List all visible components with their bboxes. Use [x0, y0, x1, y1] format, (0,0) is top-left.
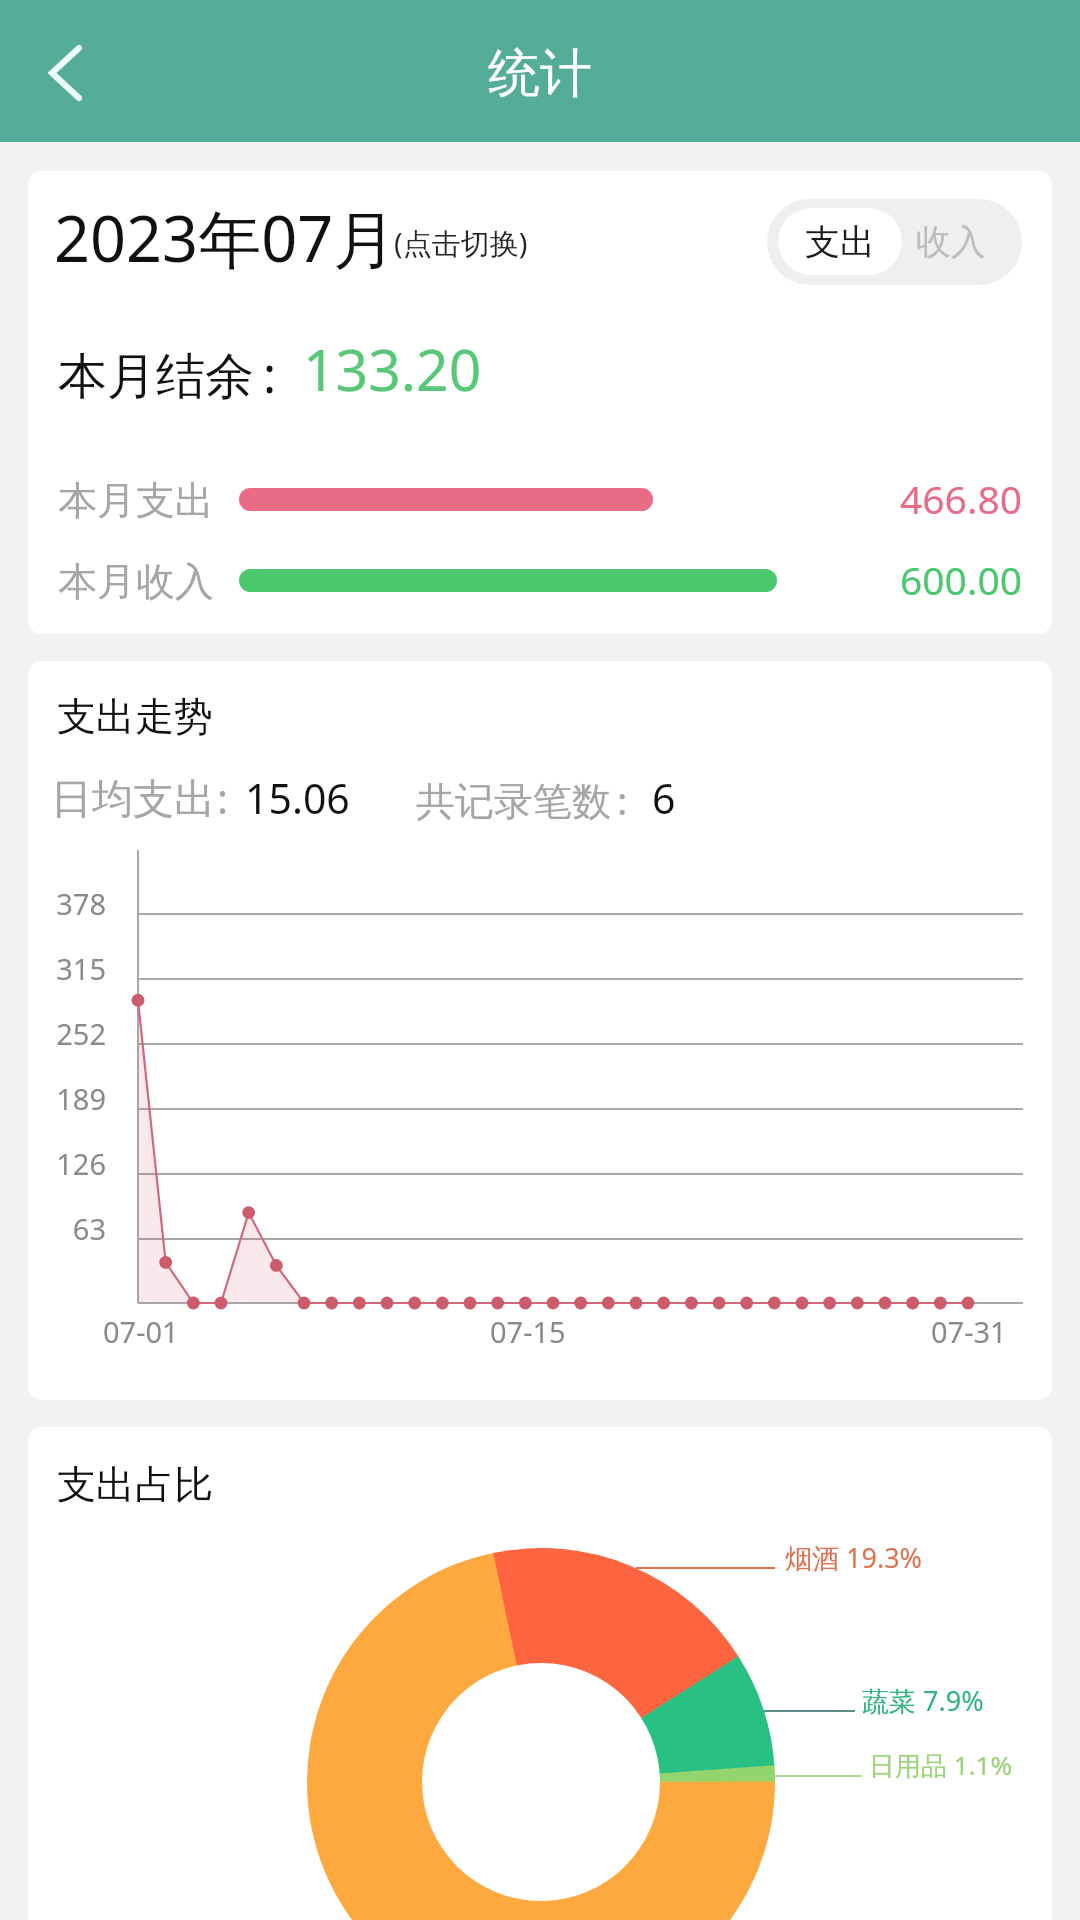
button[interactable]: Back	[22, 27, 112, 119]
staticText: 共记录笔数	[416, 777, 611, 826]
staticText: 63	[28, 1209, 106, 1248]
staticText: 2023年07月	[54, 195, 397, 281]
staticText: :	[263, 341, 277, 408]
staticText: :	[617, 773, 628, 826]
staticText: 466.80	[900, 472, 1022, 516]
staticText: 133.20	[303, 330, 482, 408]
button[interactable]: 收入	[891, 199, 1011, 285]
staticText: 6	[652, 770, 676, 826]
staticText: 支出占比	[57, 1460, 213, 1509]
button[interactable]: 2023年07月	[54, 195, 531, 281]
staticText: 07-01	[103, 1312, 179, 1351]
staticText: 蔬菜 7.9%	[862, 1682, 984, 1719]
staticText: 本月支出	[58, 476, 214, 520]
staticText: 日均支出	[51, 774, 215, 826]
button[interactable]: 支出	[778, 208, 902, 275]
staticText: 07-15	[490, 1312, 566, 1351]
staticText: 189	[28, 1079, 106, 1118]
staticText: :	[217, 770, 228, 826]
staticText: (点击切换)	[394, 223, 528, 263]
staticText: 烟酒 19.3%	[785, 1539, 923, 1576]
staticText: 收入	[916, 220, 986, 264]
staticText: 统计	[488, 41, 592, 107]
staticText: 15.06	[245, 770, 350, 826]
staticText: 378	[28, 884, 106, 923]
staticText: 600.00	[900, 553, 1022, 597]
staticText: 本月收入	[58, 557, 214, 601]
staticText: 126	[28, 1144, 106, 1183]
staticText: 本月结余	[58, 346, 254, 408]
staticText: 252	[28, 1014, 106, 1053]
staticText: 支出走势	[57, 692, 213, 741]
staticText: 支出	[805, 220, 875, 264]
staticText: 07-31	[931, 1312, 1007, 1351]
staticText: 日用品 1.1%	[869, 1747, 1013, 1783]
staticText: 315	[28, 949, 106, 988]
